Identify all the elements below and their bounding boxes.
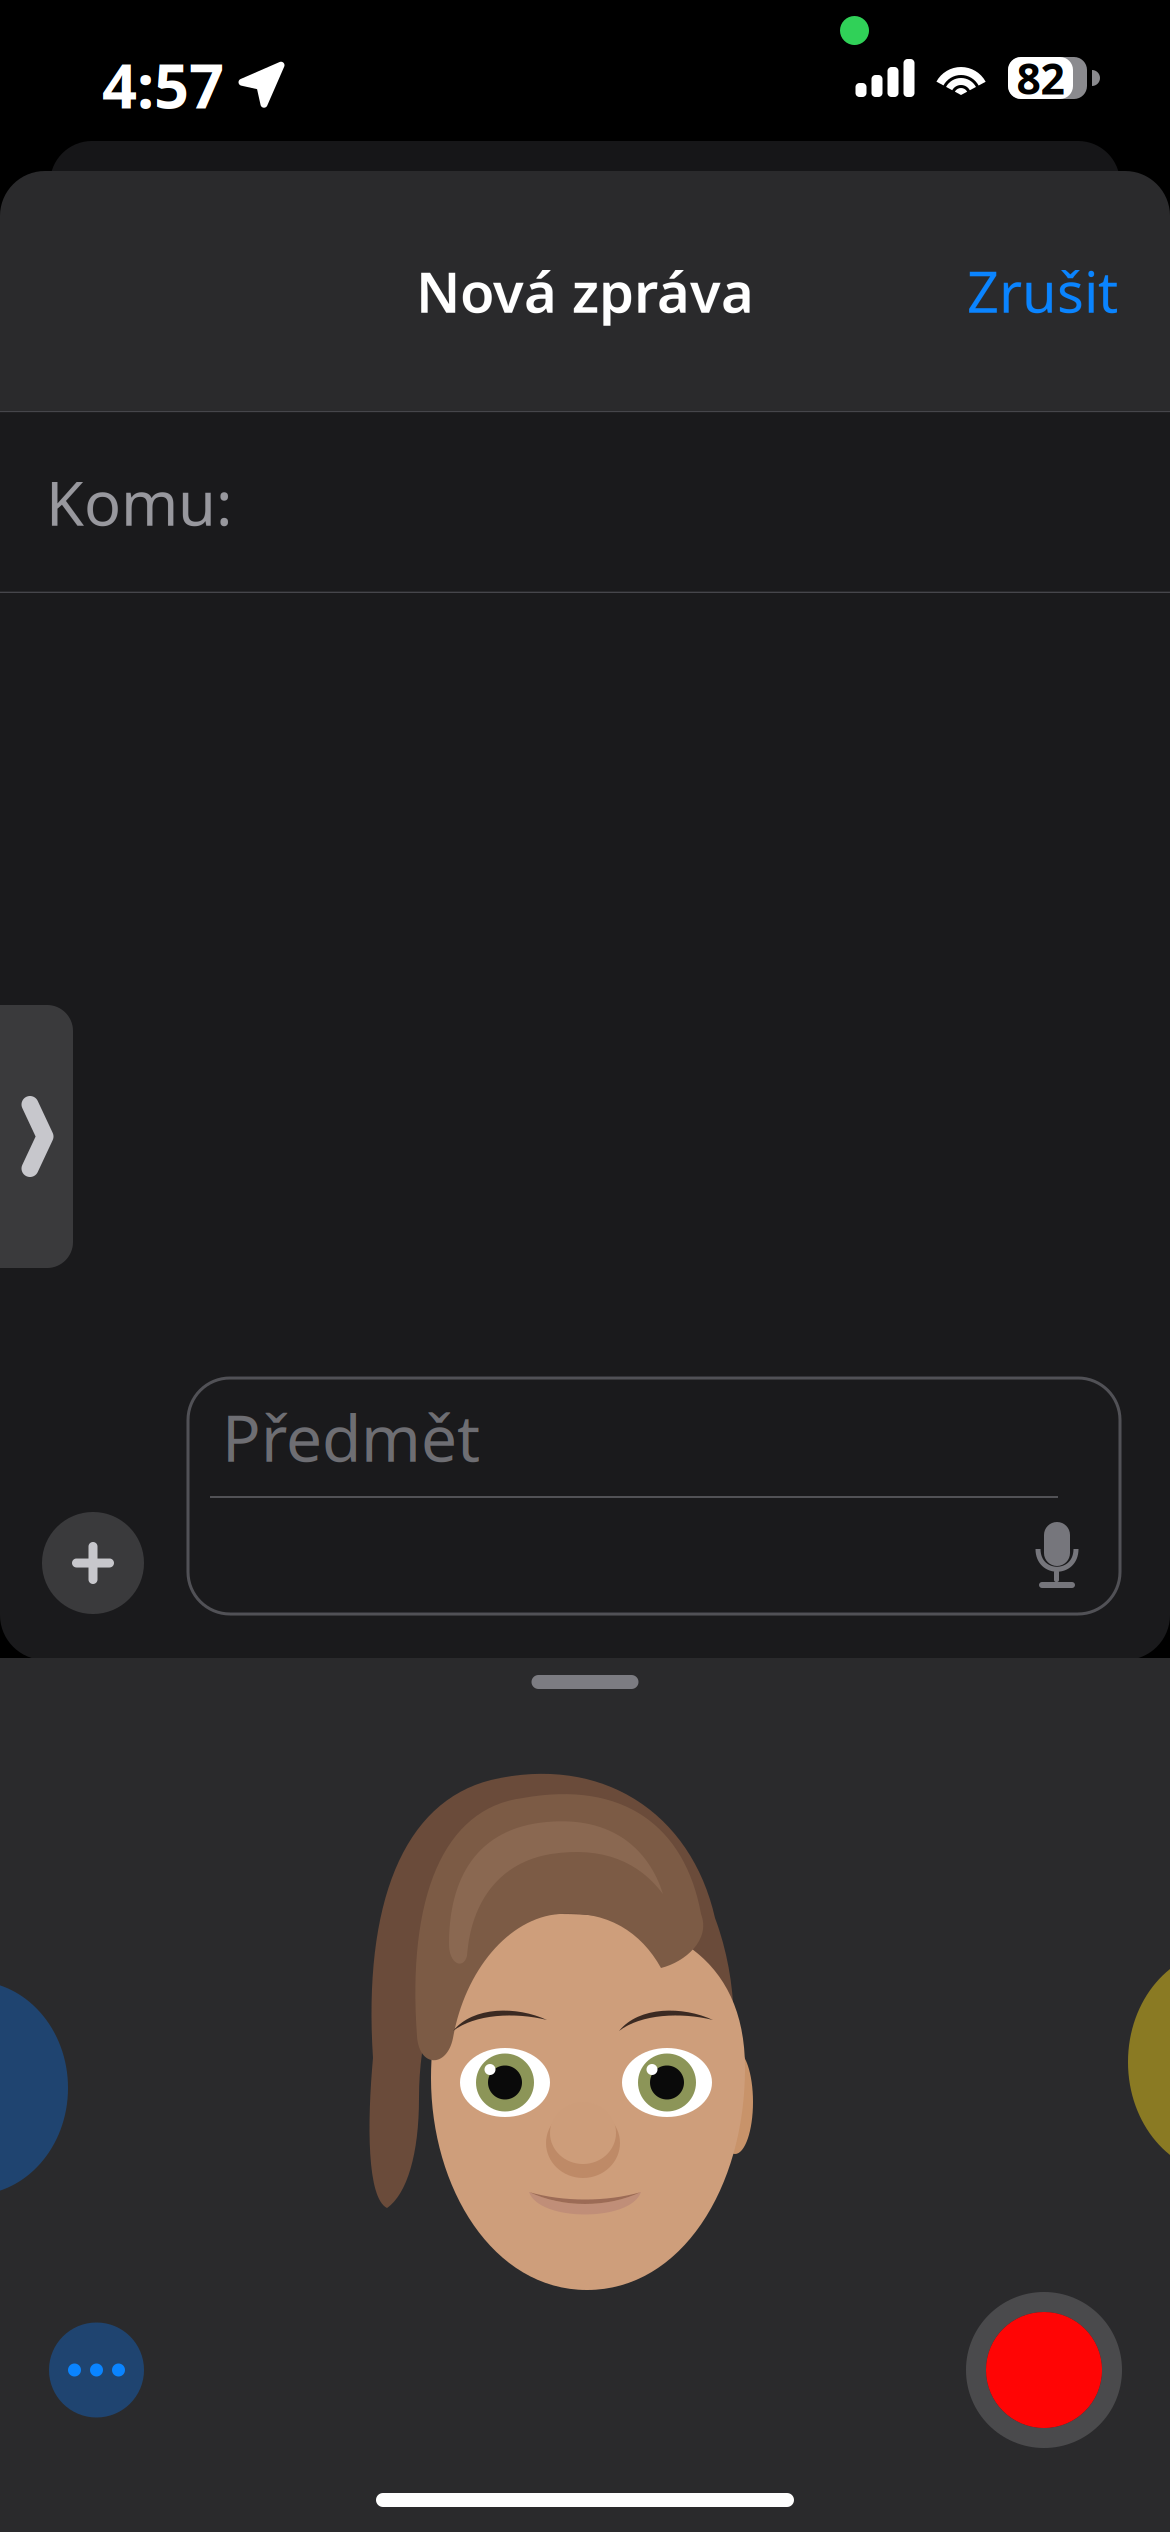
staticText: Nová zpráva bbox=[416, 254, 754, 328]
button[interactable]: Add attachment bbox=[42, 1512, 144, 1614]
staticText: 82 bbox=[1016, 50, 1064, 106]
staticText: Zrušit bbox=[967, 254, 1118, 328]
button[interactable]: Show app drawer bbox=[0, 1005, 98, 1268]
staticText: Předmět bbox=[222, 1394, 480, 1479]
button[interactable]: Komu: bbox=[0, 412, 1170, 591]
button[interactable]: Zrušit bbox=[955, 234, 1130, 348]
button[interactable]: Předmět bbox=[188, 1378, 1120, 1614]
button[interactable]: Record bbox=[966, 2292, 1122, 2448]
staticText: Komu: bbox=[46, 461, 232, 543]
button[interactable]: More options bbox=[49, 2322, 144, 2417]
staticText: 4:57 bbox=[102, 44, 224, 125]
